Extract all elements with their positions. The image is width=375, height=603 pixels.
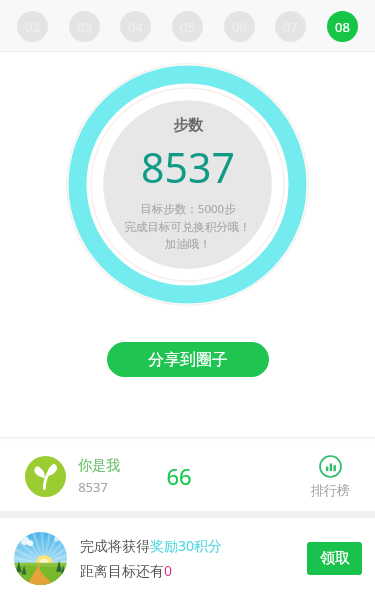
staticText: 8537 xyxy=(78,478,108,496)
button[interactable]: 排行榜 Leaderboard xyxy=(311,455,350,498)
button[interactable]: 04 xyxy=(120,11,151,42)
button[interactable]: 06 xyxy=(224,11,255,42)
staticText: 07 xyxy=(283,18,298,36)
button[interactable]: 03 xyxy=(69,11,100,42)
staticText: 02 xyxy=(25,18,40,36)
staticText: 你是我 xyxy=(78,457,120,475)
staticText: 8537 xyxy=(141,139,235,195)
button[interactable]: 02 xyxy=(17,11,48,42)
button[interactable]: 08 xyxy=(327,11,358,42)
staticText: 66 xyxy=(166,461,192,491)
staticText: 排行榜 xyxy=(311,482,350,498)
button[interactable]: 07 xyxy=(275,11,306,42)
staticText: 领取 xyxy=(320,549,350,568)
button[interactable]: 你是我 xyxy=(0,441,375,511)
staticText: 步数 xyxy=(173,116,203,135)
staticText: 加油哦！ xyxy=(165,237,211,251)
staticText: 距离目标还有0 xyxy=(80,561,173,580)
staticText: 完成目标可兑换积分哦！ xyxy=(124,220,251,234)
button[interactable]: 05 xyxy=(172,11,203,42)
button[interactable]: 领取 xyxy=(307,542,362,575)
staticText: 06 xyxy=(232,18,247,36)
staticText: 05 xyxy=(180,18,195,36)
staticText: 03 xyxy=(77,18,92,36)
button[interactable]: 分享到圈子 xyxy=(107,342,269,377)
staticText: 完成将获得奖励30积分 xyxy=(80,536,223,555)
staticText: 08 xyxy=(335,18,350,36)
staticText: 分享到圈子 xyxy=(148,350,228,370)
staticText: 04 xyxy=(128,18,143,36)
staticText: 目标步数：5000步 xyxy=(140,201,236,217)
